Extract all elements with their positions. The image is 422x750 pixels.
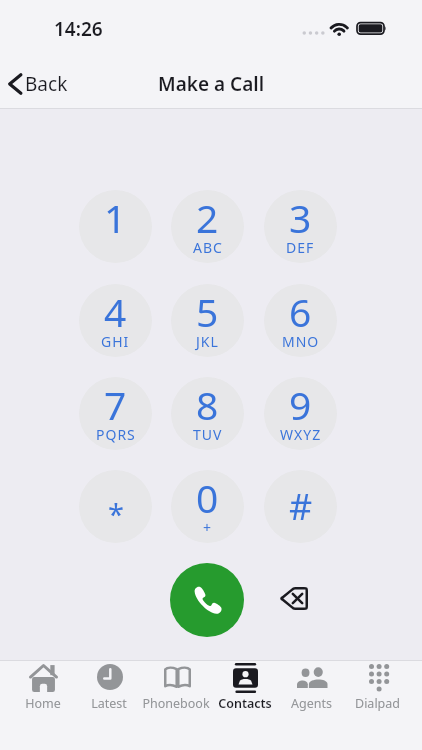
staticText: Phonebook <box>142 695 210 712</box>
staticText: Home <box>25 695 61 712</box>
staticText: 6 <box>289 285 312 338</box>
button[interactable]: Agents <box>278 660 344 712</box>
button[interactable]: 7 <box>79 377 152 450</box>
button[interactable]: * <box>79 470 152 543</box>
button[interactable]: Contacts <box>212 660 278 712</box>
button[interactable]: # <box>264 470 337 543</box>
button[interactable]: 0 <box>171 470 244 543</box>
staticText: + <box>203 518 213 537</box>
staticText: 2 <box>196 191 219 244</box>
staticText: Agents <box>291 695 332 712</box>
staticText: 14:26 <box>54 16 103 42</box>
staticText: JKL <box>196 332 219 351</box>
button[interactable]: 5 <box>171 284 244 357</box>
staticText: GHI <box>101 332 130 351</box>
staticText: Latest <box>91 695 127 712</box>
button[interactable]: Backspace <box>272 576 316 620</box>
button[interactable]: Back <box>0 65 80 103</box>
staticText: TUV <box>193 425 223 444</box>
staticText: Dialpad <box>355 695 400 712</box>
staticText: PQRS <box>96 425 136 444</box>
staticText: ABC <box>193 238 223 257</box>
staticText: Make a Call <box>158 71 265 97</box>
staticText: 9 <box>289 378 312 431</box>
staticText: * <box>108 494 124 533</box>
staticText: 3 <box>289 191 312 244</box>
button[interactable]: 4 <box>79 284 152 357</box>
button[interactable]: 8 <box>171 377 244 450</box>
staticText: 8 <box>196 378 219 431</box>
button[interactable]: 2 <box>171 190 244 263</box>
staticText: Contacts <box>218 695 272 712</box>
button[interactable]: 1 <box>79 190 152 263</box>
staticText: 5 <box>196 285 219 338</box>
button[interactable]: Call <box>170 563 244 637</box>
button[interactable]: 9 <box>264 377 337 450</box>
staticText: MNO <box>282 332 320 351</box>
button[interactable]: Phonebook <box>136 660 216 712</box>
button[interactable]: Home <box>10 660 76 712</box>
button[interactable]: 3 <box>264 190 337 263</box>
button[interactable]: Dialpad <box>344 660 410 712</box>
staticText: DEF <box>286 238 315 257</box>
staticText: 7 <box>104 378 127 431</box>
button[interactable]: Latest <box>76 660 142 712</box>
staticText: 4 <box>104 285 127 338</box>
staticText: 1 <box>104 191 127 244</box>
staticText: # <box>289 482 313 531</box>
button[interactable]: 6 <box>264 284 337 357</box>
staticText: Back <box>25 71 68 97</box>
staticText: WXYZ <box>280 425 322 444</box>
staticText: 0 <box>196 471 219 524</box>
